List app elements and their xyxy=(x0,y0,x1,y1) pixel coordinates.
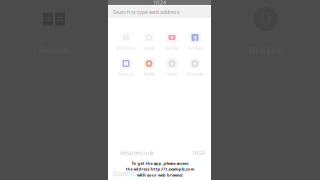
staticText: Wikipedia xyxy=(186,71,203,77)
staticText: with your web browser. xyxy=(137,172,183,177)
staticText: Reddit xyxy=(144,71,154,77)
staticText: Amazon.co.uk xyxy=(120,149,154,156)
button[interactable]: Wikipedia xyxy=(183,58,206,76)
staticText: 10:24 xyxy=(192,149,205,156)
button[interactable]: Reddit xyxy=(137,58,160,76)
button[interactable]: AliExpress xyxy=(114,32,137,50)
button[interactable]: Google xyxy=(137,32,160,50)
staticText: Search or type web address xyxy=(113,8,180,16)
staticText: Web Fing xyxy=(248,45,283,56)
staticText: Facebook xyxy=(187,45,203,51)
staticText: Yahoo xyxy=(167,71,177,77)
staticText: Google xyxy=(143,45,155,51)
button[interactable]: Amazon xyxy=(114,58,137,76)
staticText: AliExpress xyxy=(116,45,135,51)
staticText: the address http://t.example.com xyxy=(125,166,194,172)
staticText: Amazon xyxy=(118,71,133,77)
button[interactable]: YouTube xyxy=(160,32,183,50)
button[interactable]: Facebook xyxy=(183,32,206,50)
staticText: To get the app, please access xyxy=(131,161,188,166)
button[interactable]: Yahoo xyxy=(160,58,183,76)
staticText: Downloads xyxy=(113,169,148,178)
staticText: YouTube xyxy=(165,45,179,51)
staticText: 10:24 xyxy=(153,0,166,6)
button[interactable]: Peoples xyxy=(38,0,69,180)
